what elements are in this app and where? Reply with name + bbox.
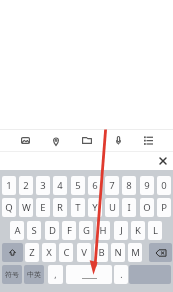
- staticText: ,: [54, 269, 57, 281]
- staticText: B: [98, 246, 105, 259]
- staticText: X: [46, 246, 52, 259]
- staticText: S: [31, 224, 37, 237]
- button[interactable]: I: [122, 198, 136, 217]
- staticText: P: [161, 201, 167, 214]
- button[interactable]: Location: [45, 130, 67, 152]
- staticText: D: [49, 224, 56, 237]
- button[interactable]: E: [36, 198, 50, 217]
- button[interactable]: Q: [2, 198, 16, 217]
- button[interactable]: Backspace: [149, 243, 172, 262]
- button[interactable]: 9: [140, 176, 154, 195]
- button[interactable]: 0: [157, 176, 171, 195]
- button[interactable]: S: [27, 221, 41, 240]
- button[interactable]: 1: [2, 176, 16, 195]
- staticText: 3: [40, 179, 46, 192]
- staticText: G: [83, 224, 90, 237]
- button[interactable]: U: [105, 198, 119, 217]
- button[interactable]: O: [140, 198, 154, 217]
- button[interactable]: M: [128, 243, 142, 262]
- staticText: H: [99, 224, 107, 237]
- staticText: K: [135, 224, 141, 237]
- button[interactable]: More options: [137, 129, 159, 151]
- staticText: 5: [75, 179, 81, 192]
- button[interactable]: Insert image: [14, 129, 36, 151]
- button[interactable]: R: [53, 198, 67, 217]
- button[interactable]: X: [42, 243, 56, 262]
- button[interactable]: Shift: [2, 243, 23, 262]
- staticText: 1: [6, 179, 12, 192]
- staticText: 9: [144, 179, 150, 192]
- button[interactable]: L: [148, 221, 162, 240]
- staticText: 6: [92, 179, 98, 192]
- staticText: R: [57, 201, 63, 214]
- button[interactable]: P: [157, 198, 171, 217]
- staticText: Y: [92, 201, 98, 214]
- button[interactable]: Files: [76, 129, 98, 151]
- staticText: O: [143, 201, 151, 214]
- button[interactable]: 8: [122, 176, 136, 195]
- button[interactable]: 7: [105, 176, 119, 195]
- staticText: 0: [161, 179, 167, 192]
- button[interactable]: 5: [71, 176, 85, 195]
- button[interactable]: T: [71, 198, 85, 217]
- staticText: N: [114, 246, 122, 259]
- button[interactable]: 符号: [2, 265, 22, 284]
- staticText: 8: [126, 179, 132, 192]
- staticText: 中英: [27, 270, 41, 279]
- button[interactable]: F: [62, 221, 76, 240]
- button[interactable]: K: [131, 221, 145, 240]
- staticText: .: [120, 269, 123, 281]
- staticText: I: [127, 201, 131, 214]
- staticText: U: [109, 201, 116, 214]
- button[interactable]: 中英: [24, 265, 44, 284]
- button[interactable]: 2: [19, 176, 33, 195]
- button[interactable]: Y: [88, 198, 102, 217]
- button[interactable]: ,: [48, 265, 63, 284]
- staticText: A: [14, 224, 21, 237]
- staticText: W: [22, 201, 31, 214]
- staticText: M: [131, 246, 140, 259]
- button[interactable]: G: [79, 221, 93, 240]
- button[interactable]: B: [94, 243, 108, 262]
- staticText: Q: [5, 201, 13, 214]
- staticText: T: [75, 201, 81, 214]
- button[interactable]: A: [10, 221, 24, 240]
- button[interactable]: J: [114, 221, 128, 240]
- button[interactable]: 3: [36, 176, 50, 195]
- staticText: 7: [109, 179, 115, 192]
- button[interactable]: 6: [88, 176, 102, 195]
- button[interactable]: Space: [66, 265, 112, 284]
- button[interactable]: V: [77, 243, 91, 262]
- staticText: L: [153, 224, 158, 237]
- staticText: 4: [57, 179, 63, 192]
- button[interactable]: Voice input: [107, 129, 129, 151]
- button[interactable]: C: [59, 243, 73, 262]
- staticText: J: [120, 224, 123, 237]
- staticText: Z: [29, 246, 35, 259]
- button[interactable]: N: [111, 243, 125, 262]
- staticText: 2: [23, 179, 29, 192]
- button[interactable]: 4: [53, 176, 67, 195]
- staticText: E: [40, 201, 46, 214]
- button[interactable]: Close: [154, 152, 172, 170]
- button[interactable]: .: [114, 265, 128, 284]
- staticText: F: [67, 224, 72, 237]
- button[interactable]: W: [19, 198, 33, 217]
- button[interactable]: H: [96, 221, 110, 240]
- staticText: 符号: [5, 270, 19, 279]
- staticText: V: [81, 246, 87, 259]
- button[interactable]: D: [45, 221, 59, 240]
- staticText: C: [63, 246, 70, 259]
- button[interactable]: Z: [25, 243, 39, 262]
